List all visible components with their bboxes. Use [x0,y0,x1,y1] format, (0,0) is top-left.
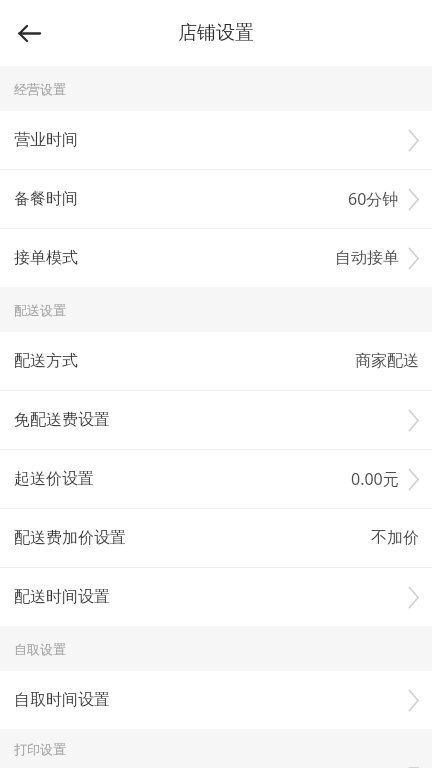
button[interactable]: 备餐时间 [0,170,432,228]
staticText: 自动接单 [335,248,399,268]
staticText: 打印设置 [14,741,66,757]
staticText: 接单模式 [14,248,78,268]
button[interactable]: 配送时间设置 [0,568,432,626]
staticText: 经营设置 [14,81,66,97]
button[interactable]: 配送费加价设置 [0,509,432,567]
button[interactable]: 配送方式 [0,332,432,390]
staticText: 配送时间设置 [14,587,110,607]
staticText: 营业时间 [14,130,78,150]
staticText: 0.00元 [351,468,399,490]
button[interactable]: 免配送费设置 [0,391,432,449]
button[interactable]: 起送价设置 [0,450,432,508]
staticText: 配送设置 [14,302,66,318]
staticText: 店铺设置 [178,21,254,45]
button[interactable]: 接单模式 [0,229,432,287]
button[interactable]: Back [7,11,51,55]
staticText: 起送价设置 [14,469,94,489]
staticText: 配送方式 [14,351,78,371]
staticText: 备餐时间 [14,189,78,209]
staticText: 配送费加价设置 [14,528,126,548]
button[interactable]: 营业时间 [0,111,432,169]
staticText: 免配送费设置 [14,410,110,430]
staticText: 自取时间设置 [14,690,110,710]
staticText: 不加价 [371,528,419,548]
staticText: 60分钟 [348,188,399,210]
staticText: 自取设置 [14,641,66,657]
staticText: 商家配送 [355,351,419,371]
button[interactable]: 自取时间设置 [0,671,432,729]
